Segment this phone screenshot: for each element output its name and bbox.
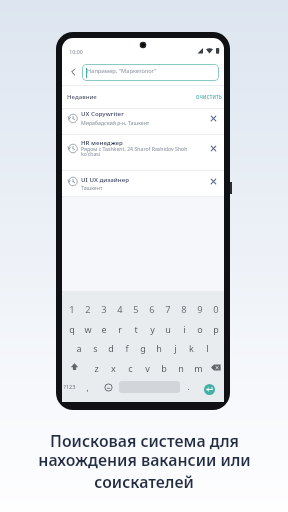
- button[interactable]: [207, 112, 220, 125]
- button[interactable]: [68, 360, 81, 373]
- staticText: d: [108, 342, 114, 354]
- button[interactable]: u: [161, 323, 175, 335]
- button[interactable]: k: [184, 342, 198, 354]
- staticText: n: [178, 362, 184, 374]
- staticText: s: [93, 342, 98, 354]
- button[interactable]: 8: [177, 303, 191, 315]
- button[interactable]: Например, "Маркетолог": [82, 64, 219, 81]
- button[interactable]: c: [123, 362, 137, 374]
- button[interactable]: n: [174, 362, 188, 374]
- staticText: b: [161, 362, 167, 374]
- button[interactable]: [209, 361, 223, 374]
- staticText: ,: [86, 382, 89, 393]
- button[interactable]: x: [106, 362, 120, 374]
- button[interactable]: f: [120, 342, 134, 354]
- staticText: 10:00: [69, 48, 83, 55]
- button[interactable]: g: [136, 342, 150, 354]
- button[interactable]: r: [113, 323, 127, 335]
- staticText: ?123: [63, 383, 76, 391]
- button[interactable]: h: [152, 342, 166, 354]
- staticText: v: [145, 362, 150, 374]
- staticText: UX Copywriter: [81, 109, 124, 117]
- staticText: 7: [165, 303, 171, 315]
- button[interactable]: 3: [97, 303, 111, 315]
- button[interactable]: 7: [161, 303, 175, 315]
- staticText: Недавние: [67, 92, 97, 100]
- button[interactable]: q: [65, 323, 79, 335]
- button[interactable]: ?123: [60, 382, 78, 392]
- button[interactable]: 5: [129, 303, 143, 315]
- button[interactable]: 2: [81, 303, 95, 315]
- button[interactable]: j: [168, 342, 182, 354]
- staticText: Например, "Маркетолог": [87, 67, 157, 75]
- button[interactable]: t: [129, 323, 143, 335]
- button[interactable]: o: [193, 323, 207, 335]
- staticText: p: [213, 323, 219, 335]
- button[interactable]: b: [157, 362, 171, 374]
- staticText: q: [69, 323, 75, 335]
- button[interactable]: v: [140, 362, 154, 374]
- staticText: m: [194, 362, 203, 374]
- staticText: y: [150, 323, 155, 335]
- button[interactable]: y: [145, 323, 159, 335]
- staticText: a: [76, 342, 82, 354]
- button[interactable]: 0: [209, 303, 223, 315]
- button[interactable]: [62, 136, 224, 160]
- staticText: o: [197, 323, 203, 335]
- staticText: e: [101, 323, 107, 335]
- button[interactable]: w: [81, 323, 95, 335]
- button[interactable]: e: [97, 323, 111, 335]
- button[interactable]: [62, 169, 224, 193]
- staticText: ОЧИСТИТЬ: [196, 94, 222, 100]
- button[interactable]: [204, 384, 215, 395]
- staticText: t: [134, 323, 138, 335]
- staticText: r: [118, 323, 122, 335]
- button[interactable]: a: [72, 342, 86, 354]
- button[interactable]: 6: [145, 303, 159, 315]
- button[interactable]: [207, 175, 220, 188]
- staticText: 5: [133, 303, 139, 315]
- staticText: .: [187, 381, 190, 392]
- staticText: соискателей: [94, 471, 194, 491]
- button[interactable]: [207, 142, 220, 155]
- button[interactable]: ,: [82, 381, 92, 393]
- button[interactable]: [103, 382, 114, 393]
- button[interactable]: l: [200, 342, 214, 354]
- button[interactable]: 4: [113, 303, 127, 315]
- button[interactable]: 9: [193, 303, 207, 315]
- staticText: нахождения вакансии или: [38, 449, 251, 469]
- staticText: 0: [213, 303, 219, 315]
- staticText: 1: [69, 303, 75, 315]
- button[interactable]: s: [88, 342, 102, 354]
- staticText: l: [206, 342, 209, 354]
- button[interactable]: p: [209, 323, 223, 335]
- button[interactable]: m: [191, 362, 205, 374]
- staticText: x: [111, 362, 116, 374]
- staticText: w: [84, 323, 92, 335]
- staticText: k: [189, 342, 194, 354]
- button[interactable]: z: [89, 362, 103, 374]
- staticText: 3: [101, 303, 107, 315]
- staticText: 8: [181, 303, 187, 315]
- staticText: 2: [85, 303, 91, 315]
- staticText: 4: [117, 303, 123, 315]
- button[interactable]: 1: [65, 303, 79, 315]
- staticText: Мирабадский р-н, Ташкент: [81, 119, 150, 126]
- button[interactable]: [66, 65, 80, 79]
- button[interactable]: .: [184, 380, 192, 392]
- button[interactable]: [62, 106, 224, 130]
- staticText: Рядом с Tashkent, 24 Sharof Rashidov Sho…: [81, 145, 188, 152]
- staticText: f: [125, 342, 129, 354]
- staticText: Ташкент: [81, 184, 103, 191]
- staticText: 9: [197, 303, 203, 315]
- staticText: z: [94, 362, 99, 374]
- staticText: ko'chasi: [81, 150, 101, 157]
- staticText: g: [140, 342, 146, 354]
- staticText: HR менеджер: [81, 138, 123, 146]
- button[interactable]: d: [104, 342, 118, 354]
- staticText: h: [156, 342, 162, 354]
- staticText: c: [128, 362, 133, 374]
- button[interactable]: i: [177, 323, 191, 335]
- button[interactable]: ОЧИСТИТЬ: [188, 91, 222, 102]
